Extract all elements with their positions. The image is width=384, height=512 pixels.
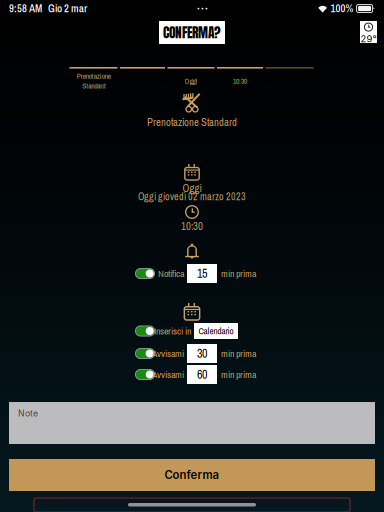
staticText: Avvisami [152,347,184,360]
staticText: 60 [197,366,207,383]
staticText: Gio 2 mar [48,1,87,16]
staticText: Calendario [198,325,233,337]
staticText: Avvisami [152,368,184,381]
staticText: CONFERMA? [163,22,221,43]
button[interactable]: Meteo, 29 gradi [360,21,377,43]
button[interactable]: CONFERMA? [159,21,225,44]
staticText: Prenotazione Standard [147,115,237,129]
staticText: Conferma [164,468,219,482]
staticText: Notifica [158,267,184,280]
button[interactable]: Notifica [0,264,384,283]
staticText: 9:58 AM [9,1,42,16]
staticText: • • • [197,3,207,14]
staticText: Prenotazione Standard [76,71,110,91]
staticText: 30 [197,345,207,362]
button[interactable]: Avvisami [0,365,384,384]
staticText: min prima [221,347,256,360]
staticText: 15 [197,265,207,282]
staticText: 100% [331,1,354,16]
staticText: 10:30 [181,219,203,233]
button[interactable]: Avvisami [0,344,384,363]
button[interactable]: Conferma [9,459,375,491]
staticText: Oggi [184,76,197,86]
staticText: 29° [360,33,376,44]
staticText: Inserisci in [154,324,191,338]
staticText: Oggi [182,181,201,195]
staticText: min prima [221,368,256,381]
staticText: Note [18,408,38,418]
staticText: 10:30 [233,76,247,86]
staticText: min prima [221,267,256,280]
staticText: Oggi giovedì 02 marzo 2023 [138,190,246,203]
button[interactable]: Inserisci in [0,323,384,339]
